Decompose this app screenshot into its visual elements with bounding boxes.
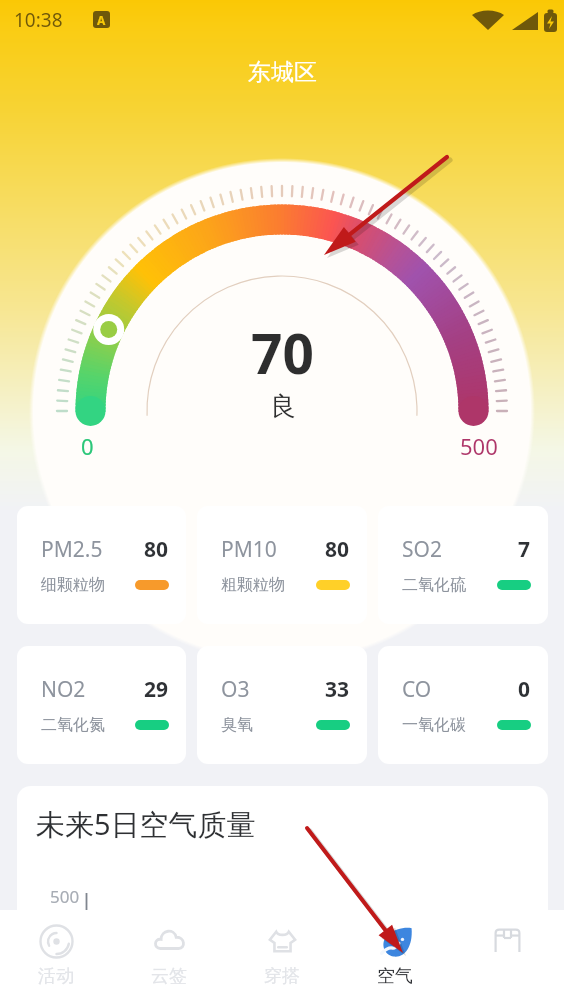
staticText: NO2 <box>41 675 86 704</box>
staticText: 80 <box>325 535 350 564</box>
button[interactable]: O3 <box>197 646 367 764</box>
staticText: 80 <box>144 535 169 564</box>
staticText: O3 <box>221 675 250 704</box>
staticText: 29 <box>144 675 169 704</box>
staticText: 良 <box>270 390 296 423</box>
staticText: 10:38 <box>14 7 63 33</box>
button[interactable]: CO <box>378 646 548 764</box>
staticText: 臭氧 <box>221 715 253 735</box>
staticText: PM2.5 <box>41 535 103 564</box>
staticText: 0 <box>81 431 94 461</box>
button[interactable]: 空气 <box>338 910 451 1004</box>
staticText: 未来5日空气质量 <box>36 804 256 844</box>
staticText: 粗颗粒物 <box>221 575 285 595</box>
button[interactable]: NO2 <box>17 646 186 764</box>
staticText: 空气 <box>377 965 413 988</box>
staticText: SO2 <box>402 535 442 564</box>
staticText: 二氧化硫 <box>402 575 466 595</box>
staticText: 一氧化碳 <box>402 715 466 735</box>
button[interactable]: PM2.5 <box>17 506 186 624</box>
button[interactable]: 穿搭 <box>225 910 338 1004</box>
staticText: 70 <box>251 315 314 390</box>
button[interactable]: 云签 <box>112 910 225 1004</box>
staticText: PM10 <box>221 535 277 564</box>
staticText: 穿搭 <box>264 965 300 988</box>
staticText: CO <box>402 675 432 704</box>
staticText: 细颗粒物 <box>41 575 105 595</box>
staticText: 7 <box>518 535 531 564</box>
button[interactable]: 未来5日空气质量 <box>17 786 548 986</box>
staticText: A <box>97 12 106 28</box>
staticText: 33 <box>325 675 350 704</box>
staticText: 东城区 <box>248 58 317 87</box>
button[interactable]: 更多 <box>451 910 564 1004</box>
staticText: 二氧化氮 <box>41 715 105 735</box>
button[interactable]: SO2 <box>378 506 548 624</box>
staticText: 500 <box>50 885 80 908</box>
staticText: 活动 <box>38 965 74 988</box>
staticText: 500 <box>460 431 498 461</box>
staticText: 0 <box>518 675 531 704</box>
staticText: 云签 <box>151 965 187 988</box>
button[interactable]: PM10 <box>197 506 367 624</box>
button[interactable]: 活动 <box>0 910 112 1004</box>
